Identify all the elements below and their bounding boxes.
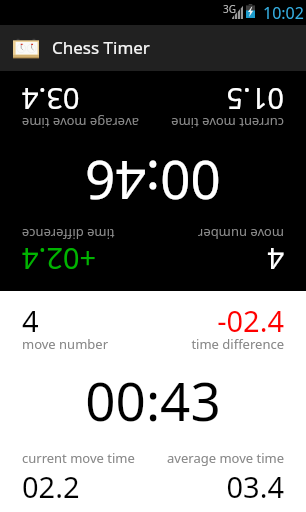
- staticText: 00:43: [85, 364, 221, 436]
- staticText: 3G: [223, 2, 236, 16]
- staticText: +02.4: [22, 240, 97, 279]
- staticText: average move time: [22, 114, 139, 132]
- staticText: current move time: [22, 449, 135, 467]
- staticText: 03.4: [22, 80, 80, 119]
- button[interactable]: Black player clock, 00:46, tap to switch: [0, 71, 306, 291]
- staticText: 10:02: [263, 2, 304, 24]
- button[interactable]: Chess Timer: [0, 25, 306, 71]
- staticText: time difference: [22, 225, 115, 243]
- staticText: 03.4: [226, 467, 284, 506]
- button[interactable]: White player clock, 00:43, tap to switch: [0, 291, 306, 512]
- staticText: 4: [267, 240, 284, 279]
- staticText: 4: [22, 301, 39, 340]
- staticText: move number: [22, 335, 108, 353]
- staticText: Chess Timer: [52, 36, 150, 59]
- staticText: 01.5: [226, 80, 284, 119]
- staticText: move number: [198, 225, 284, 243]
- staticText: 02.2: [22, 467, 80, 506]
- staticText: -02.4: [217, 301, 284, 340]
- staticText: average move time: [167, 449, 284, 467]
- staticText: current move time: [171, 114, 284, 132]
- staticText: time difference: [191, 335, 284, 353]
- staticText: 00:46: [85, 146, 221, 218]
